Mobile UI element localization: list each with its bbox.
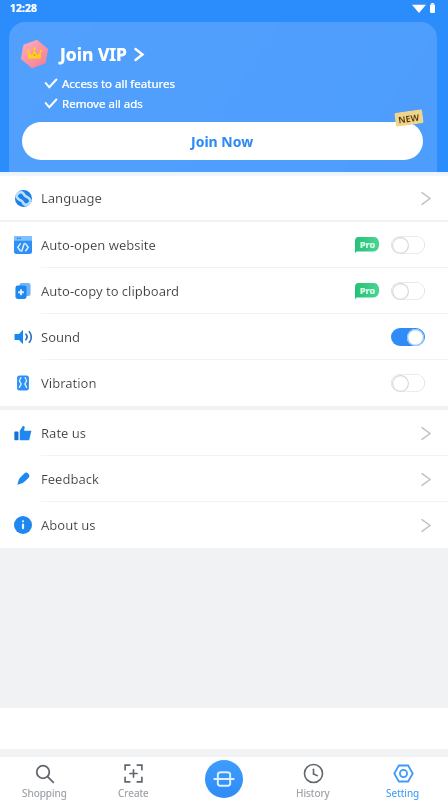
button[interactable]: Setting — [358, 757, 448, 800]
button[interactable]: Feedback — [0, 456, 448, 502]
button[interactable]: Rate us — [0, 410, 448, 456]
button[interactable]: Off — [391, 236, 425, 254]
button[interactable]: On — [391, 328, 425, 346]
staticText: Setting — [386, 786, 420, 800]
staticText: Pro — [360, 284, 376, 296]
button[interactable]: Off — [391, 374, 425, 392]
button[interactable]: Auto-open website — [0, 222, 448, 268]
staticText: Join VIP — [60, 42, 127, 66]
staticText: Rate us — [41, 424, 87, 442]
button[interactable]: Language — [0, 176, 448, 220]
staticText: Access to all features — [62, 76, 176, 92]
button[interactable]: Off — [391, 282, 425, 300]
button[interactable]: Join Now — [22, 122, 423, 160]
button[interactable]: Shopping — [0, 757, 89, 800]
button[interactable]: History — [268, 757, 358, 800]
staticText: Feedback — [41, 470, 99, 488]
staticText: Remove all ads — [62, 96, 143, 112]
staticText: Shopping — [22, 786, 67, 800]
staticText: Auto-copy to clipboard — [41, 282, 180, 300]
button[interactable]: Vibration — [0, 360, 448, 406]
button[interactable]: Join VIP — [20, 39, 144, 69]
staticText: NEW — [397, 110, 421, 125]
staticText: Language — [41, 189, 102, 207]
button[interactable]: Scan — [205, 760, 243, 798]
button[interactable]: Create — [89, 757, 178, 800]
staticText: Vibration — [41, 374, 97, 392]
staticText: Sound — [41, 328, 81, 346]
staticText: 12:28 — [10, 1, 37, 15]
button[interactable]: Sound — [0, 314, 448, 360]
staticText: About us — [41, 516, 96, 534]
staticText: History — [296, 786, 330, 800]
button[interactable]: Auto-copy to clipboard — [0, 268, 448, 314]
staticText: Join Now — [191, 132, 254, 151]
button[interactable]: About us — [0, 502, 448, 548]
staticText: Create — [118, 786, 149, 800]
staticText: Auto-open website — [41, 236, 156, 254]
staticText: Pro — [360, 238, 376, 250]
